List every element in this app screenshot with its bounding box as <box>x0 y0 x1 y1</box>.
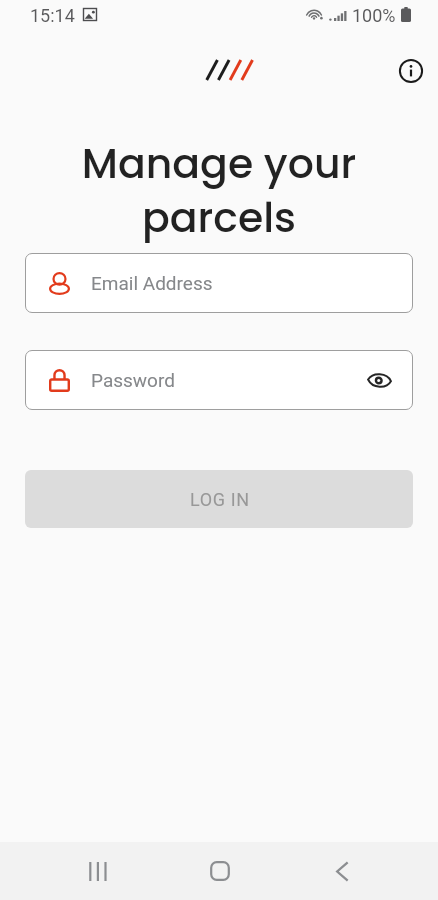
staticText: 100% <box>352 5 396 26</box>
staticText: LOG IN <box>190 489 250 510</box>
button[interactable]: Home <box>178 842 262 900</box>
button[interactable]: Info <box>389 49 433 93</box>
button[interactable]: Email Address <box>25 253 413 313</box>
button[interactable]: Show password <box>357 358 401 402</box>
button[interactable]: Password <box>25 350 413 410</box>
staticText: Email Address <box>91 272 213 294</box>
button[interactable]: Back <box>300 842 384 900</box>
button[interactable]: Recent apps <box>56 842 140 900</box>
staticText: 15:14 <box>30 5 75 26</box>
button[interactable]: LOG IN <box>25 470 413 528</box>
staticText: Password <box>91 369 175 391</box>
staticText: Manage your parcels <box>0 135 438 246</box>
